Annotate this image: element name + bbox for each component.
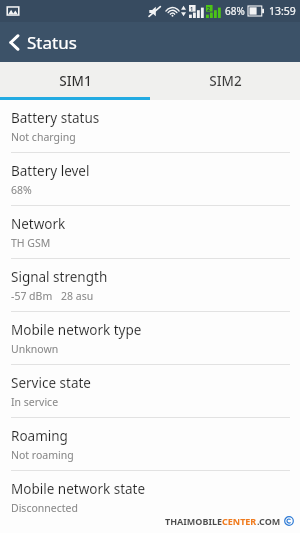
button[interactable]: Battery level xyxy=(0,153,300,205)
staticText: THAIMOBILE xyxy=(165,515,222,527)
staticText: Battery status xyxy=(11,109,100,127)
staticText: Roaming xyxy=(11,427,68,445)
button[interactable]: Roaming xyxy=(0,418,300,470)
staticText: -57 dBm xyxy=(11,289,53,303)
staticText: Signal strength xyxy=(11,268,108,286)
staticText: 28 asu xyxy=(61,289,94,303)
staticText: CENTER xyxy=(222,515,257,527)
staticText: Battery level xyxy=(11,162,90,180)
staticText: Mobile network state xyxy=(11,480,146,498)
staticText: 68% xyxy=(225,4,245,18)
other: Back xyxy=(9,34,20,51)
button[interactable]: Mobile network state xyxy=(0,471,300,523)
staticText: In service xyxy=(11,395,59,409)
button[interactable]: Network xyxy=(0,206,300,258)
staticText: TH GSM xyxy=(11,236,51,250)
staticText: .COM xyxy=(257,515,281,527)
staticText: 68% xyxy=(11,183,32,197)
button[interactable]: Service state xyxy=(0,365,300,417)
button[interactable]: Mobile network type xyxy=(0,312,300,364)
button[interactable]: Back xyxy=(0,27,87,58)
button[interactable]: SIM2 xyxy=(150,62,300,100)
staticText: 13:59 xyxy=(269,4,296,18)
staticText: Not roaming xyxy=(11,448,74,462)
staticText: SIM2 xyxy=(209,72,242,90)
staticText: Not charging xyxy=(11,130,76,144)
staticText: Mobile network type xyxy=(11,321,142,339)
staticText: Disconnected xyxy=(11,501,78,515)
button[interactable]: SIM1 xyxy=(0,62,150,100)
staticText: 2 xyxy=(207,5,211,12)
button[interactable]: Signal strength xyxy=(0,259,300,311)
staticText: Network xyxy=(11,215,66,233)
staticText: Service state xyxy=(11,374,91,392)
staticText: Status xyxy=(27,31,77,54)
staticText: 1 xyxy=(190,5,194,12)
button[interactable]: Battery status xyxy=(0,100,300,152)
staticText: SIM1 xyxy=(59,72,92,90)
staticText: Unknown xyxy=(11,342,59,356)
